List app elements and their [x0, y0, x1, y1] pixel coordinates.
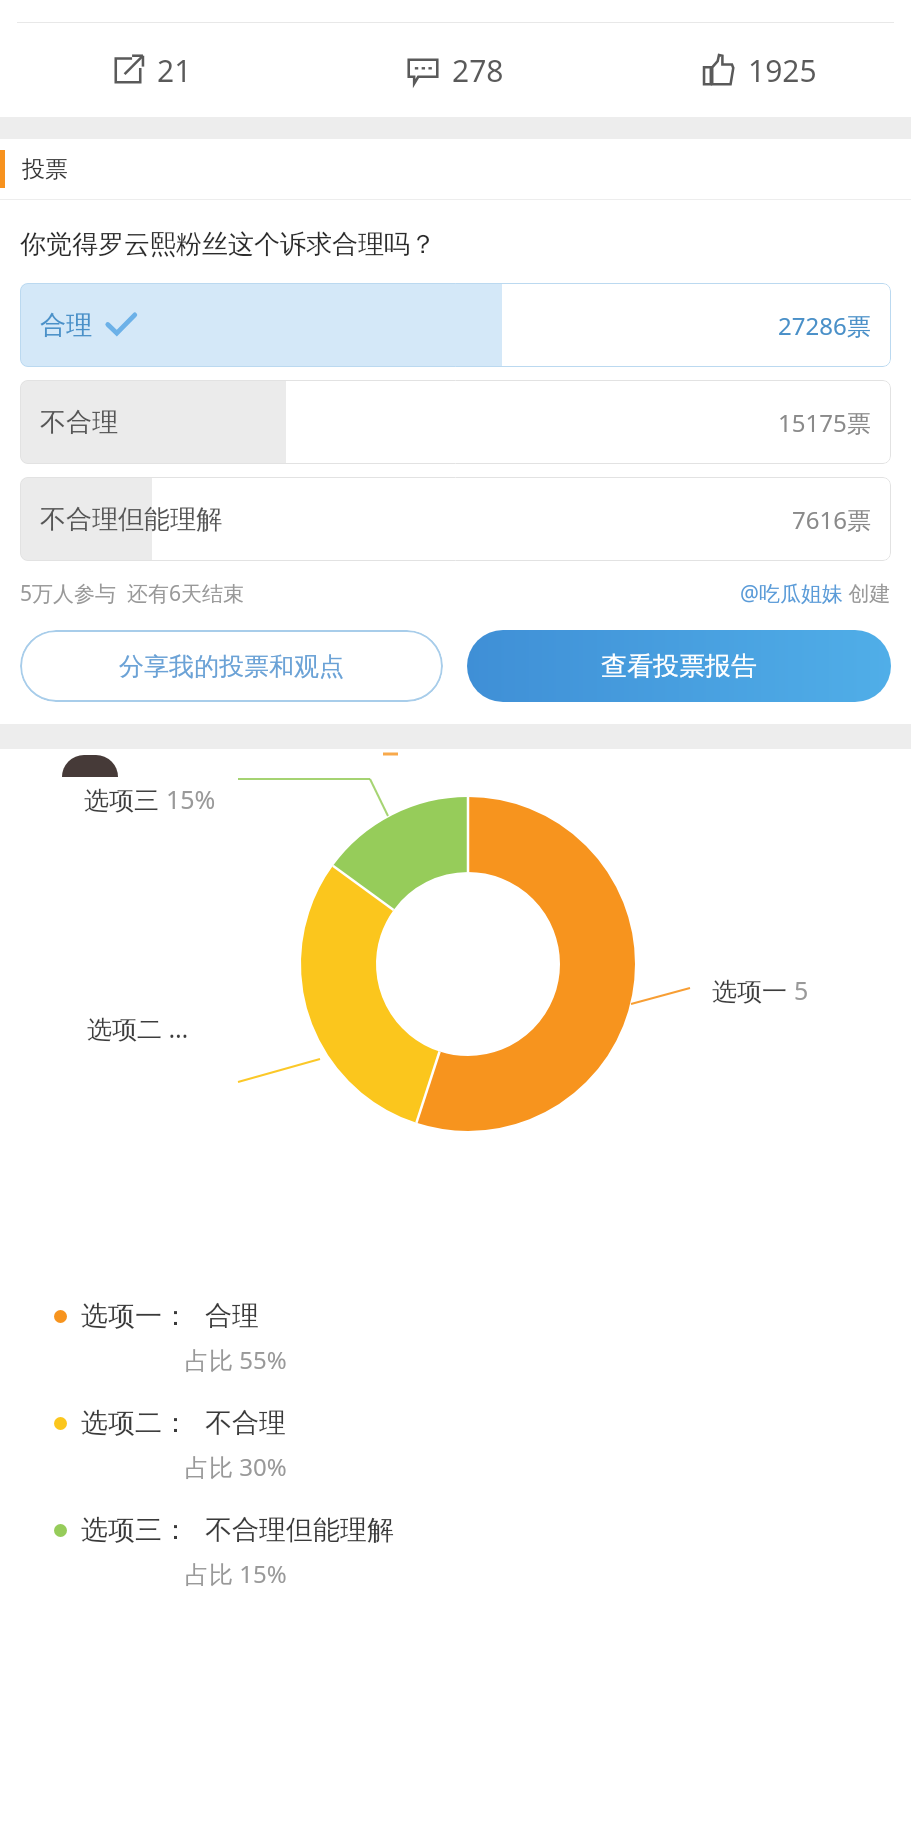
staticText: 不合理但能理解 — [205, 1513, 394, 1547]
staticText: 1925 — [748, 50, 817, 91]
button[interactable]: 不合理 — [20, 380, 891, 464]
staticText: 创建 — [843, 579, 891, 608]
button[interactable]: 选项一： — [54, 1299, 911, 1376]
button[interactable]: @吃瓜姐妹 — [740, 579, 891, 608]
staticText: 5 — [794, 973, 809, 1007]
staticText: 选项一： — [81, 1299, 189, 1333]
staticText: 15175票 — [778, 406, 871, 439]
button[interactable]: 选项三： — [54, 1513, 911, 1590]
staticText: 占比 55% — [185, 1343, 287, 1376]
button[interactable]: 合理 — [20, 283, 891, 367]
staticText: 选项二 … — [87, 1011, 189, 1045]
button[interactable]: Like — [607, 23, 911, 117]
staticText: 合理 — [205, 1299, 259, 1333]
button[interactable]: 选项二： — [54, 1406, 911, 1483]
staticText: 21 — [157, 50, 192, 91]
staticText: 不合理 — [205, 1406, 286, 1440]
staticText: 15% — [166, 782, 216, 816]
button[interactable]: Comment — [303, 23, 607, 117]
staticText: 278 — [452, 50, 504, 91]
staticText: 5万人参与 还有6天结束 — [20, 579, 244, 608]
staticText: 分享我的投票和观点 — [119, 651, 344, 682]
button[interactable]: 分享我的投票和观点 — [20, 630, 443, 702]
staticText: 查看投票报告 — [601, 650, 757, 683]
button[interactable]: 查看投票报告 — [467, 630, 891, 702]
staticText: 选项一 — [712, 973, 794, 1007]
button[interactable]: Share — [0, 23, 303, 117]
button[interactable]: 不合理但能理解 — [20, 477, 891, 561]
staticText: 占比 15% — [185, 1557, 287, 1590]
staticText: 选项二： — [81, 1406, 189, 1440]
staticText: 不合理 — [40, 406, 118, 439]
staticText: 27286票 — [778, 309, 871, 342]
staticText: 不合理但能理解 — [40, 503, 222, 536]
staticText: @吃瓜姐妹 — [740, 579, 843, 608]
staticText: 选项三： — [81, 1513, 189, 1547]
staticText: 占比 30% — [185, 1450, 287, 1483]
staticText: 合理 — [40, 309, 92, 342]
staticText: 7616票 — [792, 503, 871, 536]
staticText: 投票 — [22, 155, 68, 184]
staticText: 你觉得罗云熙粉丝这个诉求合理吗？ — [20, 228, 436, 261]
staticText: 选项三 — [84, 782, 166, 816]
